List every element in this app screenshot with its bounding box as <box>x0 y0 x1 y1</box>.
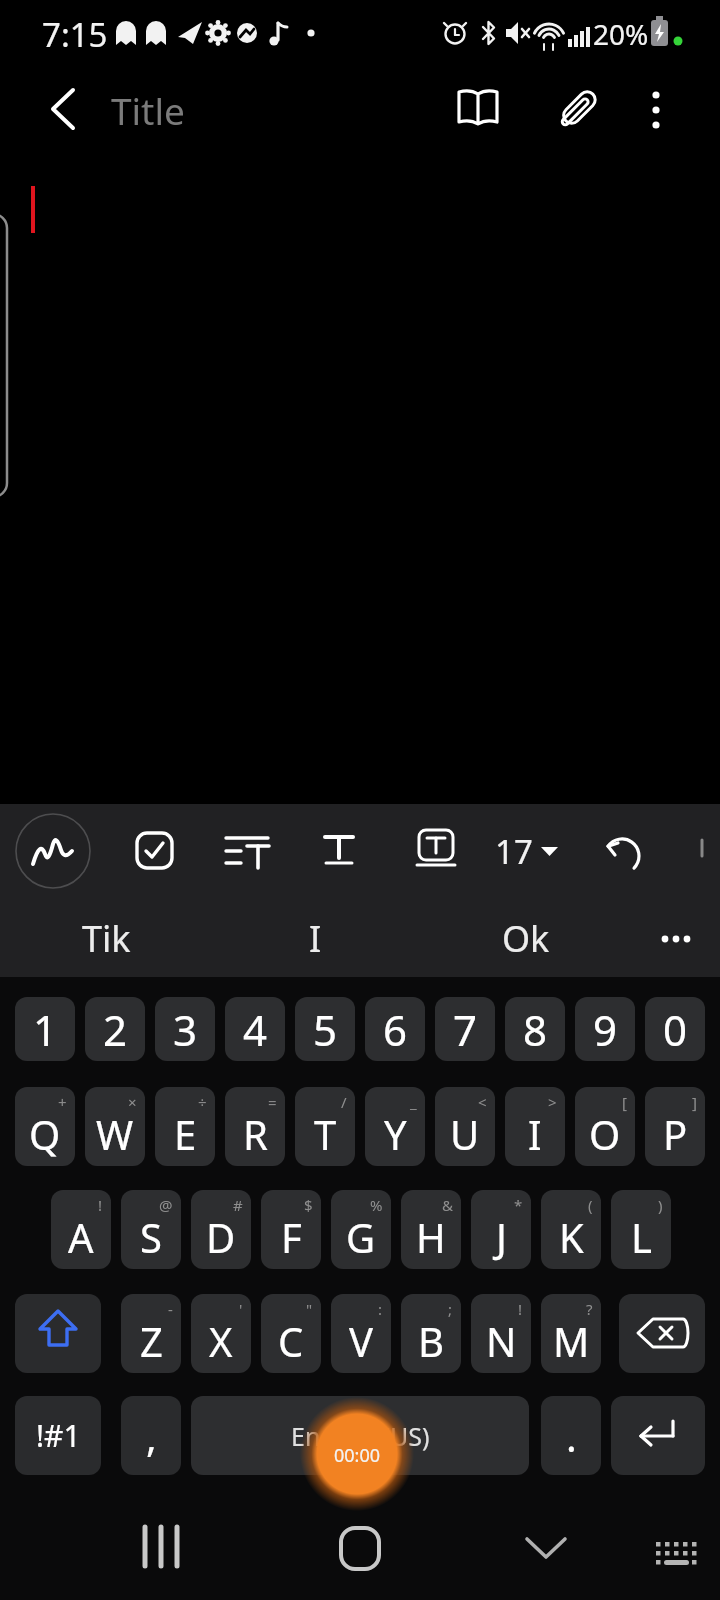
button[interactable]: . <box>541 1396 601 1475</box>
button[interactable]: X <box>191 1294 251 1373</box>
button[interactable]: 17 <box>488 822 564 880</box>
staticText: / <box>341 1092 347 1112</box>
button[interactable] <box>596 822 654 880</box>
staticText: [ <box>622 1092 627 1112</box>
button[interactable]: G <box>331 1190 391 1269</box>
button[interactable]: Tik <box>60 903 152 973</box>
staticText: 9 <box>593 1001 618 1058</box>
staticText: * <box>514 1195 523 1215</box>
button[interactable] <box>328 1514 392 1578</box>
button[interactable]: M <box>541 1294 601 1373</box>
button[interactable]: B <box>401 1294 461 1373</box>
button[interactable]: 9 <box>575 997 635 1061</box>
staticText: Tik <box>82 914 131 963</box>
staticText: @ <box>159 1195 173 1215</box>
staticText: & <box>442 1195 453 1215</box>
button[interactable]: A <box>51 1190 111 1269</box>
staticText: 4 <box>243 1001 268 1058</box>
staticText: !#1 <box>36 1415 81 1456</box>
staticText: 5 <box>313 1001 338 1058</box>
staticText: : <box>378 1299 383 1319</box>
button[interactable] <box>128 1514 192 1578</box>
staticText: 0 <box>663 1001 688 1058</box>
button[interactable]: 8 <box>505 997 565 1061</box>
staticText: 00:00 <box>334 1443 381 1468</box>
staticText: < <box>478 1092 487 1112</box>
staticText: 1 <box>33 1001 58 1058</box>
button[interactable] <box>636 82 676 138</box>
staticText: Title <box>111 85 185 135</box>
button[interactable]: 6 <box>365 997 425 1061</box>
button[interactable]: Ok <box>491 903 561 973</box>
button[interactable]: !#1 <box>15 1396 101 1475</box>
staticText: M <box>553 1314 590 1368</box>
button[interactable]: D <box>191 1190 251 1269</box>
button[interactable] <box>15 1294 101 1373</box>
button[interactable]: H <box>401 1190 461 1269</box>
button[interactable]: U <box>435 1087 495 1166</box>
button[interactable] <box>552 84 604 134</box>
staticText: O <box>589 1107 621 1161</box>
button[interactable]: L <box>611 1190 671 1269</box>
button[interactable]: W <box>85 1087 145 1166</box>
button[interactable]: V <box>331 1294 391 1373</box>
button[interactable] <box>218 824 278 880</box>
button[interactable]: S <box>121 1190 181 1269</box>
staticText: R <box>243 1107 268 1161</box>
button[interactable]: E <box>155 1087 215 1166</box>
button[interactable] <box>611 1396 705 1475</box>
staticText: L <box>631 1210 652 1264</box>
button[interactable]: Z <box>121 1294 181 1373</box>
button[interactable] <box>450 84 506 134</box>
staticText: = <box>268 1092 277 1112</box>
staticText: + <box>58 1092 67 1112</box>
staticText: ÷ <box>198 1092 207 1112</box>
button[interactable]: 0 <box>645 997 705 1061</box>
button[interactable]: C <box>261 1294 321 1373</box>
button[interactable] <box>316 820 364 880</box>
button[interactable]: 7 <box>435 997 495 1061</box>
staticText: , <box>146 1409 157 1463</box>
staticText: $ <box>304 1195 313 1215</box>
button[interactable]: 2 <box>85 997 145 1061</box>
button[interactable]: J <box>471 1190 531 1269</box>
button[interactable]: N <box>471 1294 531 1373</box>
staticText: U <box>450 1107 480 1161</box>
staticText: Y <box>384 1107 407 1161</box>
staticText: A <box>68 1210 94 1264</box>
button[interactable] <box>640 1514 704 1578</box>
staticText: Z <box>140 1314 163 1368</box>
staticText: D <box>206 1210 236 1264</box>
staticText: " <box>306 1299 313 1319</box>
button[interactable]: I <box>505 1087 565 1166</box>
staticText: H <box>416 1210 446 1264</box>
staticText: ! <box>98 1195 103 1215</box>
button[interactable]: 3 <box>155 997 215 1061</box>
button[interactable]: I <box>280 903 350 973</box>
button[interactable] <box>126 824 182 880</box>
button[interactable]: P <box>645 1087 705 1166</box>
button[interactable]: T <box>295 1087 355 1166</box>
staticText: 20% <box>593 15 649 51</box>
button[interactable]: K <box>541 1190 601 1269</box>
staticText: 7 <box>453 1001 478 1058</box>
button[interactable] <box>30 80 78 136</box>
button[interactable]: O <box>575 1087 635 1166</box>
button[interactable] <box>408 822 464 878</box>
staticText: C <box>278 1314 304 1368</box>
button[interactable]: Q <box>15 1087 75 1166</box>
button[interactable]: R <box>225 1087 285 1166</box>
button[interactable] <box>14 812 92 890</box>
button[interactable] <box>619 1294 705 1373</box>
button[interactable]: 4 <box>225 997 285 1061</box>
button[interactable]: English (US) <box>191 1396 529 1475</box>
button[interactable]: 1 <box>15 997 75 1061</box>
staticText: ( <box>588 1195 593 1215</box>
button[interactable] <box>640 903 706 973</box>
button[interactable] <box>514 1514 578 1578</box>
button[interactable]: Y <box>365 1087 425 1166</box>
staticText: ? <box>586 1299 593 1319</box>
button[interactable]: 5 <box>295 997 355 1061</box>
button[interactable]: F <box>261 1190 321 1269</box>
button[interactable]: , <box>121 1396 181 1475</box>
